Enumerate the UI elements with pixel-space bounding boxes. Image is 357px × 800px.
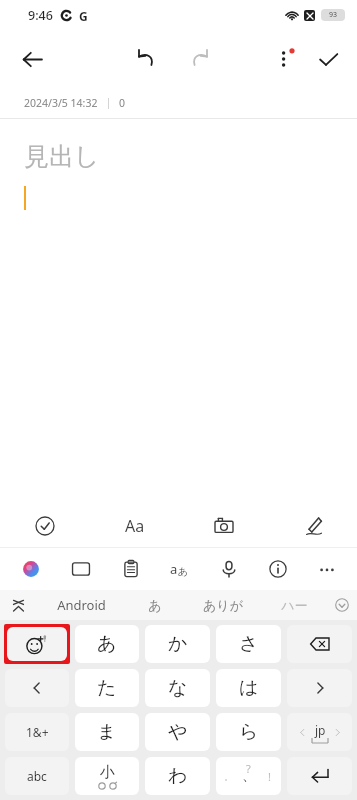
button[interactable]: な [145, 669, 210, 707]
button[interactable]: Small character [75, 757, 139, 795]
button[interactable]: abc [5, 757, 69, 795]
button[interactable]: ら [216, 713, 281, 751]
staticText: 2024/3/5 14:32 [24, 96, 98, 110]
button[interactable]: Backspace [287, 625, 352, 663]
button[interactable]: Collapse [0, 590, 36, 620]
staticText: た [97, 676, 117, 700]
button[interactable]: Checklist [0, 505, 90, 547]
button[interactable]: ま [75, 713, 139, 751]
button[interactable]: Move cursor right [287, 669, 352, 707]
button[interactable]: GIF [56, 548, 106, 590]
staticText: 。 [224, 771, 233, 782]
staticText: 小 [100, 763, 115, 782]
button[interactable]: Info [253, 548, 302, 590]
staticText: 、 [242, 767, 256, 785]
staticText: 0 [119, 96, 126, 110]
staticText: 見出し [24, 141, 100, 172]
staticText: わ [168, 764, 188, 788]
staticText: 1&+ [26, 724, 49, 740]
button[interactable]: Redo [180, 38, 222, 80]
button[interactable]: ハー [262, 590, 327, 620]
button[interactable]: は [216, 669, 281, 707]
staticText: 9:46 [28, 7, 53, 24]
button[interactable]: あ [75, 625, 139, 663]
button[interactable]: や [145, 713, 210, 751]
staticText: あ [178, 565, 189, 578]
button[interactable]: Back [10, 37, 54, 81]
button[interactable]: Format text [90, 505, 179, 547]
staticText: ら [239, 720, 259, 744]
staticText: あ [148, 597, 162, 613]
button[interactable]: Clipboard [106, 548, 155, 590]
button[interactable]: ありが [183, 590, 262, 620]
button[interactable]: Space, Japanese [287, 713, 352, 751]
staticText: か [168, 632, 188, 656]
button[interactable]: た [75, 669, 139, 707]
button[interactable]: Translate [155, 548, 204, 590]
staticText: abc [27, 768, 47, 784]
staticText: jp [315, 722, 326, 738]
button[interactable]: Emoji and voice input [7, 627, 67, 661]
button[interactable]: さ [216, 625, 281, 663]
button[interactable]: Move cursor left [5, 669, 69, 707]
button[interactable]: Expand suggestions [327, 590, 357, 620]
staticText: Android [57, 596, 106, 614]
button[interactable]: Voice input [204, 548, 253, 590]
button[interactable]: か [145, 625, 210, 663]
button[interactable]: Done [307, 38, 349, 80]
button[interactable]: あ [126, 590, 183, 620]
staticText: や [168, 720, 188, 744]
staticText: Aa [125, 515, 145, 537]
button[interactable]: Draw [268, 505, 357, 547]
button[interactable]: Android [36, 590, 126, 620]
staticText: ? [246, 761, 251, 776]
staticText: な [168, 676, 188, 700]
button[interactable]: Undo [124, 38, 166, 80]
staticText: さ [239, 632, 259, 656]
button[interactable]: Punctuation [216, 757, 281, 795]
button[interactable]: Enter [287, 757, 352, 795]
button[interactable]: Camera [179, 505, 268, 547]
button[interactable]: More [302, 548, 351, 590]
staticText: あ [97, 632, 117, 656]
button[interactable]: わ [145, 757, 210, 795]
staticText: 93 [329, 10, 338, 20]
staticText: ハー [281, 597, 308, 613]
staticText: ! [268, 769, 271, 784]
staticText: ありが [203, 597, 243, 613]
button[interactable]: More options [265, 38, 307, 80]
staticText: a [170, 560, 178, 578]
button[interactable]: Assistant [6, 548, 56, 590]
staticText: G [79, 8, 88, 24]
staticText: ま [97, 720, 117, 744]
button[interactable]: 1&+ [5, 713, 69, 751]
staticText: は [239, 676, 259, 700]
